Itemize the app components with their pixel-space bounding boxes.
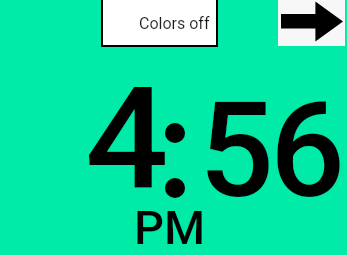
staticText: Colors off — [139, 14, 210, 33]
staticText: PM — [134, 200, 206, 255]
button[interactable]: Next — [278, 0, 345, 46]
staticText: 56 — [199, 74, 342, 229]
button[interactable]: Colors off — [101, 0, 218, 47]
staticText: 4 — [85, 57, 169, 223]
